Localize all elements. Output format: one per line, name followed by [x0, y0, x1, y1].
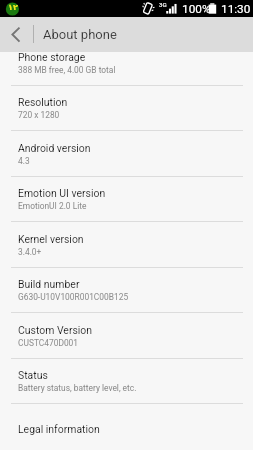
- staticText: ١٢: [8, 3, 18, 12]
- staticText: Emotion UI version: [18, 187, 106, 199]
- button[interactable]: Android version: [0, 131, 253, 177]
- staticText: G630-U10V100R001C00B125: [18, 292, 129, 302]
- staticText: 720 x 1280: [18, 110, 60, 120]
- staticText: CUSTC470D001: [18, 338, 79, 348]
- staticText: Build number: [18, 278, 80, 290]
- staticText: 388 MB free, 4.00 GB total: [18, 65, 116, 75]
- staticText: Resolution: [18, 96, 68, 108]
- button[interactable]: Phone storage: [0, 40, 253, 86]
- button[interactable]: Build number: [0, 267, 253, 313]
- button[interactable]: Custom Version: [0, 313, 253, 359]
- staticText: 3G: [159, 1, 167, 8]
- staticText: 4.3: [18, 156, 30, 166]
- staticText: Status: [18, 369, 48, 381]
- staticText: Phone storage: [18, 51, 86, 63]
- button[interactable]: Kernel version: [0, 222, 253, 268]
- staticText: Android version: [18, 142, 91, 154]
- staticText: Legal information: [18, 423, 100, 435]
- staticText: Custom Version: [18, 324, 93, 336]
- staticText: Kernel version: [18, 233, 84, 245]
- button[interactable]: Emotion UI version: [0, 176, 253, 222]
- staticText: Battery status, battery level, etc.: [18, 383, 137, 393]
- staticText: 3.4.0+: [18, 247, 42, 257]
- staticText: 11:30: [221, 2, 251, 16]
- button[interactable]: Legal information: [0, 404, 253, 450]
- button[interactable]: Status: [0, 358, 253, 404]
- staticText: About phone: [43, 27, 117, 42]
- button[interactable]: Resolution: [0, 85, 253, 131]
- staticText: EmotionUI 2.0 Lite: [18, 201, 87, 211]
- button[interactable]: Back: [0, 17, 33, 52]
- staticText: 100%: [182, 2, 211, 16]
